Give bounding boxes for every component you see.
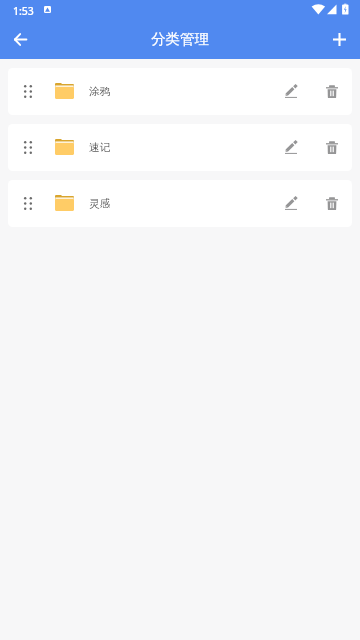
staticText: 速记 bbox=[89, 141, 111, 154]
button[interactable]: Add bbox=[320, 19, 359, 59]
button[interactable]: Edit bbox=[275, 68, 307, 115]
button[interactable]: Edit bbox=[275, 180, 307, 227]
button[interactable]: 速记 bbox=[8, 124, 352, 171]
button[interactable]: Back bbox=[1, 19, 39, 59]
button[interactable]: 灵感 bbox=[8, 180, 352, 227]
staticText: 分类管理 bbox=[151, 30, 209, 48]
staticText: 涂鸦 bbox=[89, 85, 111, 98]
staticText: 灵感 bbox=[89, 197, 111, 210]
button[interactable]: Delete bbox=[316, 124, 348, 171]
button[interactable]: Edit bbox=[275, 124, 307, 171]
staticText: 1:53 bbox=[13, 4, 34, 18]
button[interactable]: Delete bbox=[316, 68, 348, 115]
button[interactable]: 涂鸦 bbox=[8, 68, 352, 115]
button[interactable]: Delete bbox=[316, 180, 348, 227]
